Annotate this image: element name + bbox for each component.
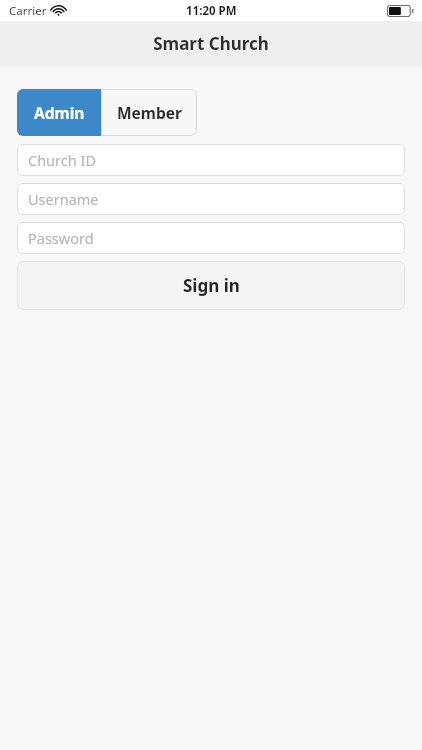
- staticText: Username: [28, 189, 99, 209]
- button[interactable]: Password: [17, 222, 405, 254]
- staticText: Member: [117, 102, 182, 123]
- button[interactable]: Admin: [17, 89, 101, 136]
- staticText: Church ID: [28, 150, 96, 170]
- button[interactable]: Member: [101, 89, 197, 136]
- staticText: Password: [28, 228, 94, 248]
- staticText: Smart Church: [153, 32, 269, 55]
- other: Wi-Fi signal: [52, 6, 65, 16]
- button[interactable]: Username: [17, 183, 405, 215]
- other: Battery level: [387, 5, 414, 17]
- staticText: 11:20 PM: [186, 3, 237, 19]
- staticText: Sign in: [183, 274, 240, 297]
- button[interactable]: Church ID: [17, 144, 405, 176]
- staticText: Admin: [34, 102, 85, 123]
- staticText: Carrier: [9, 3, 47, 19]
- button[interactable]: Sign in: [17, 261, 405, 310]
